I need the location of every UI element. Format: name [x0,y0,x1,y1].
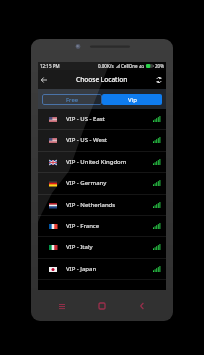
button[interactable]: VIP - Germany [38,173,166,193]
button[interactable]: VIP - United Kingdom [38,152,166,172]
staticText: VIP - Italy [66,243,93,251]
staticText: VIP - Netherlands [66,201,116,209]
button[interactable]: Refresh [152,70,165,89]
button[interactable]: Free [42,94,102,105]
button[interactable]: VIP - US - East [38,109,166,129]
button[interactable]: Recent apps [53,297,71,315]
staticText: 0.00K/s [98,63,114,69]
button[interactable]: VIP - Japan [38,259,166,279]
button[interactable]: VIP - Italy [38,237,166,257]
staticText: VIP - Germany [66,179,107,187]
button[interactable]: Back [133,297,151,315]
staticText: VIP - France [66,222,100,230]
button[interactable]: Back [36,70,52,89]
button[interactable]: Vip [102,94,162,105]
staticText: VIP - Japan [66,265,97,273]
staticText: Free [66,96,79,104]
staticText: CellOne [121,63,138,69]
button[interactable]: VIP - Netherlands [38,195,166,215]
staticText: VIP - US - East [66,115,105,123]
staticText: 12:15 PM [40,63,60,69]
staticText: VIP - United Kingdom [66,158,127,166]
staticText: VIP - US - West [66,136,107,144]
staticText: 4G [139,64,145,69]
staticText: 20% [155,63,164,69]
button[interactable]: Home [93,297,111,315]
staticText: Choose Location [76,75,128,84]
button[interactable]: VIP - US - West [38,130,166,150]
staticText: Vip [128,96,137,104]
button[interactable]: VIP - France [38,216,166,236]
